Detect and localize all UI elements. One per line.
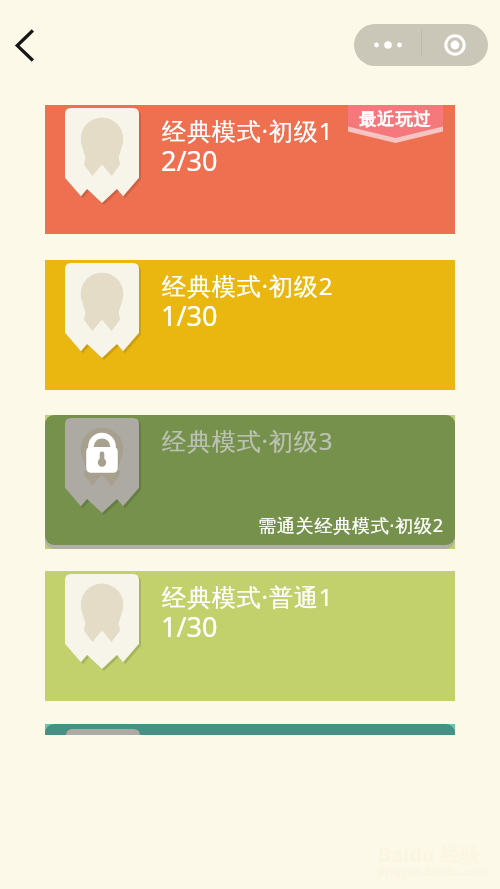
button[interactable]: Back	[2, 21, 48, 69]
staticText: 经典模式·初级3	[162, 424, 334, 457]
staticText: 1/30	[161, 608, 218, 645]
button[interactable]	[45, 724, 455, 735]
button[interactable]: 经典模式·普通1	[45, 571, 455, 701]
staticText: 需通关经典模式·初级2	[258, 513, 444, 538]
staticText: 经典模式·普通1	[162, 580, 334, 613]
button[interactable]: 经典模式·初级2	[45, 260, 455, 390]
button[interactable]: 经典模式·初级1	[45, 105, 455, 234]
staticText: 2/30	[161, 142, 218, 179]
button[interactable]: Close	[421, 24, 488, 66]
button[interactable]: 经典模式·初级3	[45, 415, 455, 549]
button[interactable]: More	[354, 24, 421, 66]
staticText: 1/30	[161, 297, 218, 334]
staticText: 经典模式·初级2	[162, 269, 334, 302]
staticText: 最近玩过	[359, 109, 432, 130]
staticText: 经典模式·初级1	[162, 114, 334, 147]
